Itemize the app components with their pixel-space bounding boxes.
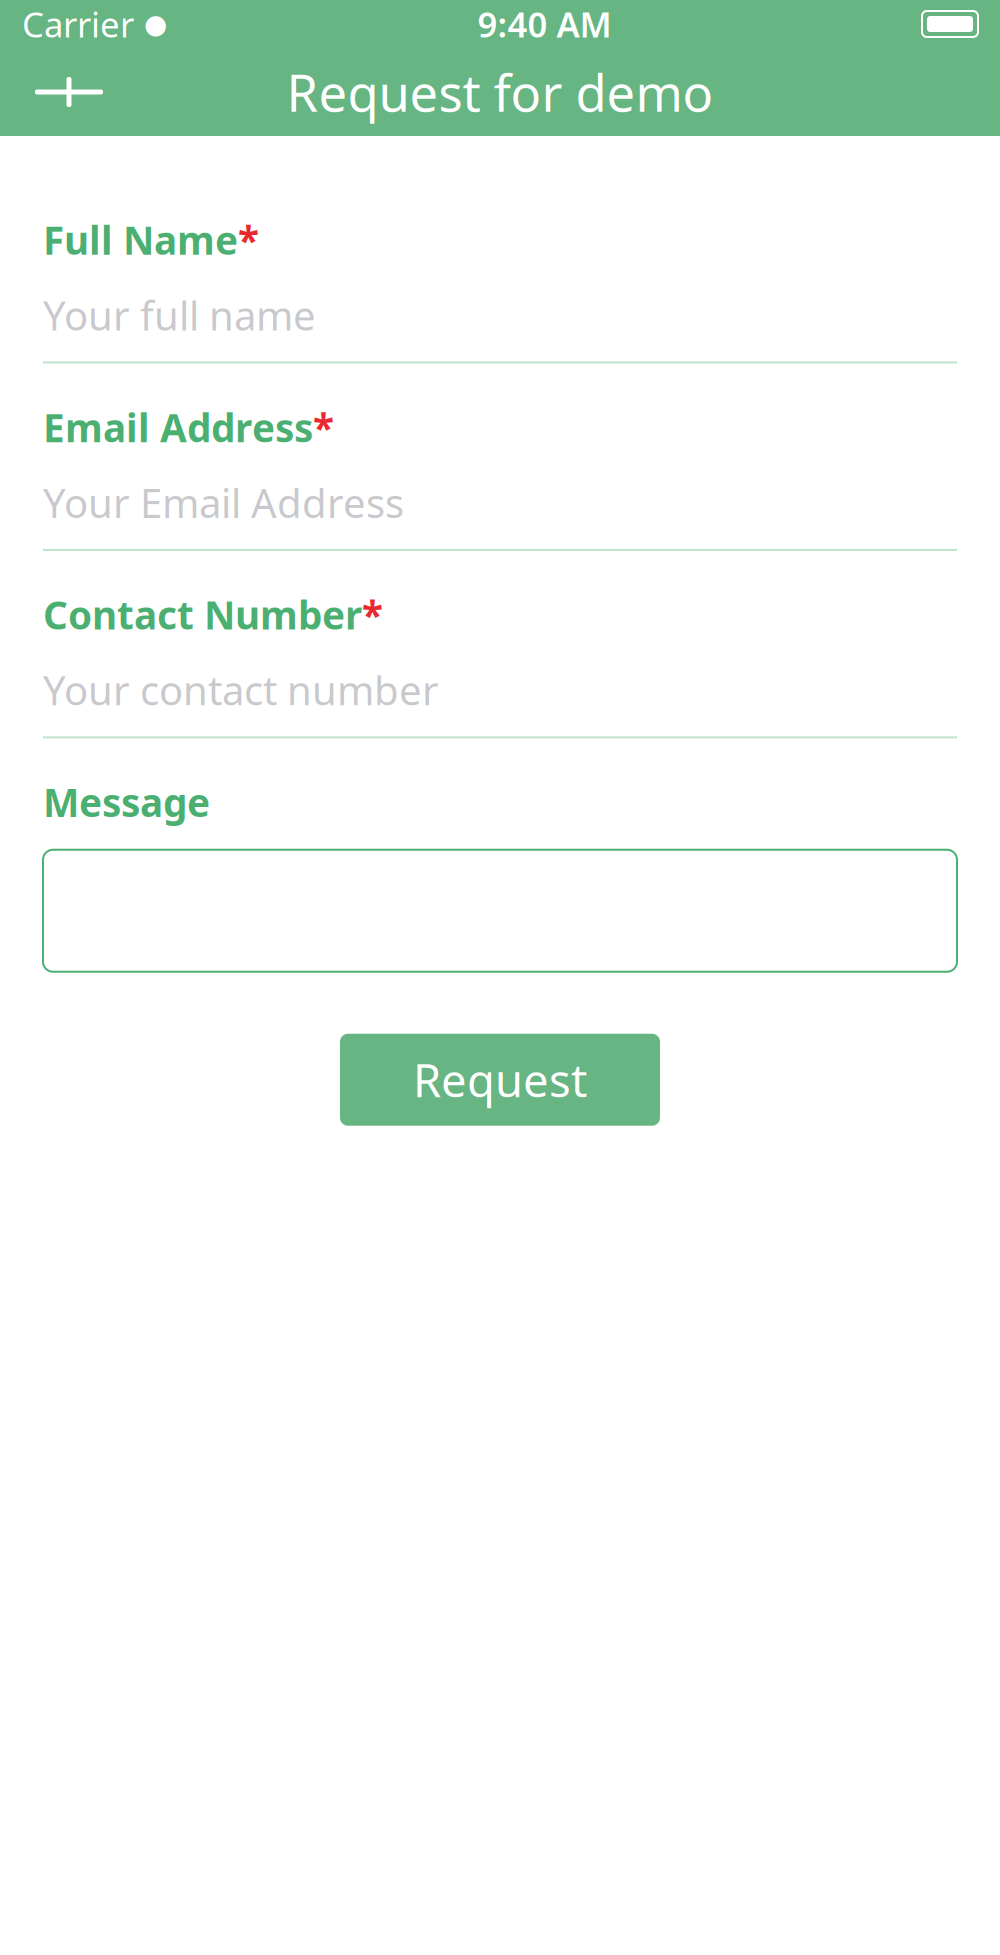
staticText: *	[362, 589, 383, 640]
staticText: Your contact number	[43, 663, 439, 716]
button[interactable]: Request	[340, 1034, 660, 1126]
staticText: Full Name	[43, 214, 238, 265]
staticText: 9:40 AM	[477, 1, 611, 47]
staticText: Your Email Address	[43, 476, 404, 529]
button[interactable]: Back	[24, 52, 114, 132]
staticText: Request	[413, 1050, 587, 1110]
staticText: Carrier	[22, 1, 134, 47]
staticText: Your full name	[43, 288, 316, 341]
staticText: Message	[43, 776, 210, 828]
staticText: Contact Number	[43, 589, 362, 640]
staticText: Request for demo	[286, 58, 713, 126]
staticText: *	[238, 214, 259, 265]
staticText: Email Address	[43, 401, 313, 453]
staticText: ●	[144, 9, 167, 39]
staticText: *	[313, 401, 334, 453]
